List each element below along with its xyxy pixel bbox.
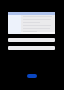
button[interactable] bbox=[8, 12, 55, 34]
button[interactable] bbox=[8, 46, 55, 50]
button[interactable] bbox=[8, 38, 55, 42]
button[interactable]: Continue bbox=[27, 74, 37, 78]
